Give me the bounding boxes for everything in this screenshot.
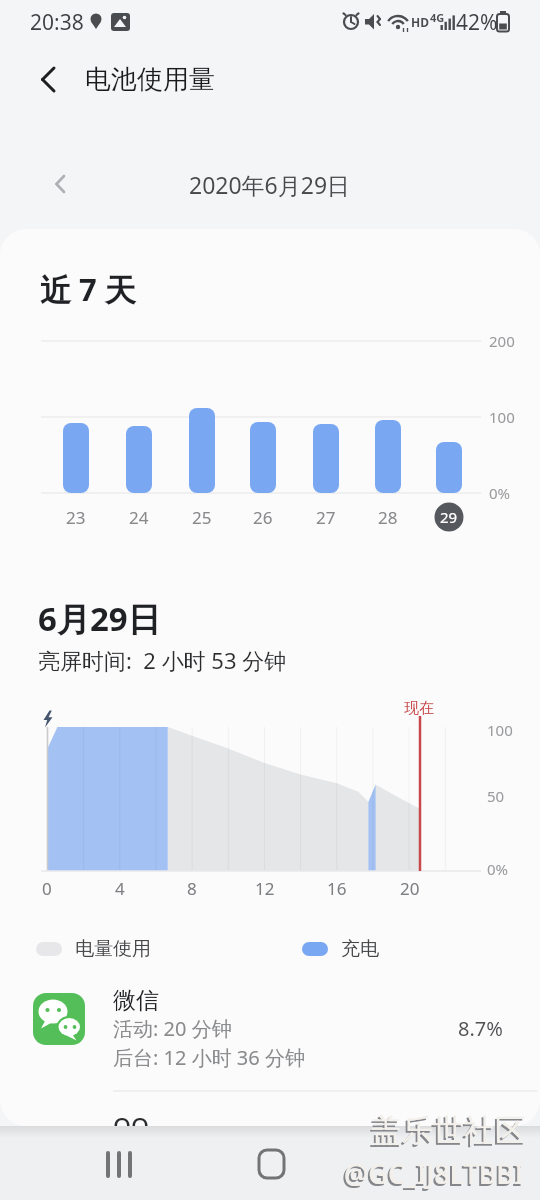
staticText: 50: [487, 786, 505, 806]
staticText: 8.7%: [458, 1015, 503, 1042]
staticText: 42%: [456, 8, 498, 37]
staticText: 盖乐世社区: [371, 1111, 526, 1150]
staticText: 4: [115, 877, 125, 900]
staticText: 现在: [404, 699, 434, 718]
staticText: 29: [440, 507, 458, 527]
staticText: 12: [255, 877, 275, 900]
staticText: 100: [489, 407, 515, 427]
staticText: 6月29日: [38, 596, 161, 641]
staticText: 盖乐世社区: [369, 1113, 524, 1152]
button[interactable]: [20, 985, 520, 1075]
staticText: 16: [327, 877, 347, 900]
staticText: 亮屏时间: 2 小时 53 分钟: [38, 645, 287, 675]
staticText: 200: [489, 331, 515, 351]
staticText: 20: [400, 877, 420, 900]
staticText: 电池使用量: [85, 63, 215, 96]
button[interactable]: [26, 56, 72, 102]
button[interactable]: [92, 1140, 140, 1188]
staticText: 充电: [341, 937, 379, 961]
staticText: 4G: [430, 10, 445, 25]
staticText: 电量使用: [75, 937, 151, 961]
staticText: 24: [129, 506, 149, 529]
staticText: 23: [66, 506, 86, 529]
staticText: 20:38: [30, 8, 84, 37]
staticText: 27: [316, 506, 336, 529]
staticText: 近 7 天: [40, 268, 136, 310]
staticText: 8: [187, 877, 197, 900]
staticText: QQ: [113, 1110, 150, 1126]
staticText: 28: [378, 506, 398, 529]
button[interactable]: [247, 1140, 295, 1188]
button[interactable]: [40, 162, 84, 206]
staticText: HD: [411, 14, 429, 30]
staticText: 后台: 12 小时 36 分钟: [113, 1044, 305, 1071]
staticText: 微信: [113, 986, 159, 1015]
staticText: 0%: [489, 483, 511, 503]
staticText: 100: [487, 720, 513, 740]
staticText: 0: [42, 877, 52, 900]
staticText: 26: [253, 506, 273, 529]
staticText: @GC_IJ8LTBBI: [344, 1155, 524, 1192]
staticText: @GC_IJ8LTBBI: [342, 1157, 522, 1194]
staticText: 2020年6月29日: [189, 169, 351, 200]
staticText: 25: [192, 506, 212, 529]
staticText: 活动: 20 分钟: [113, 1015, 232, 1042]
staticText: 0%: [487, 859, 509, 879]
button[interactable]: [400, 1140, 448, 1188]
